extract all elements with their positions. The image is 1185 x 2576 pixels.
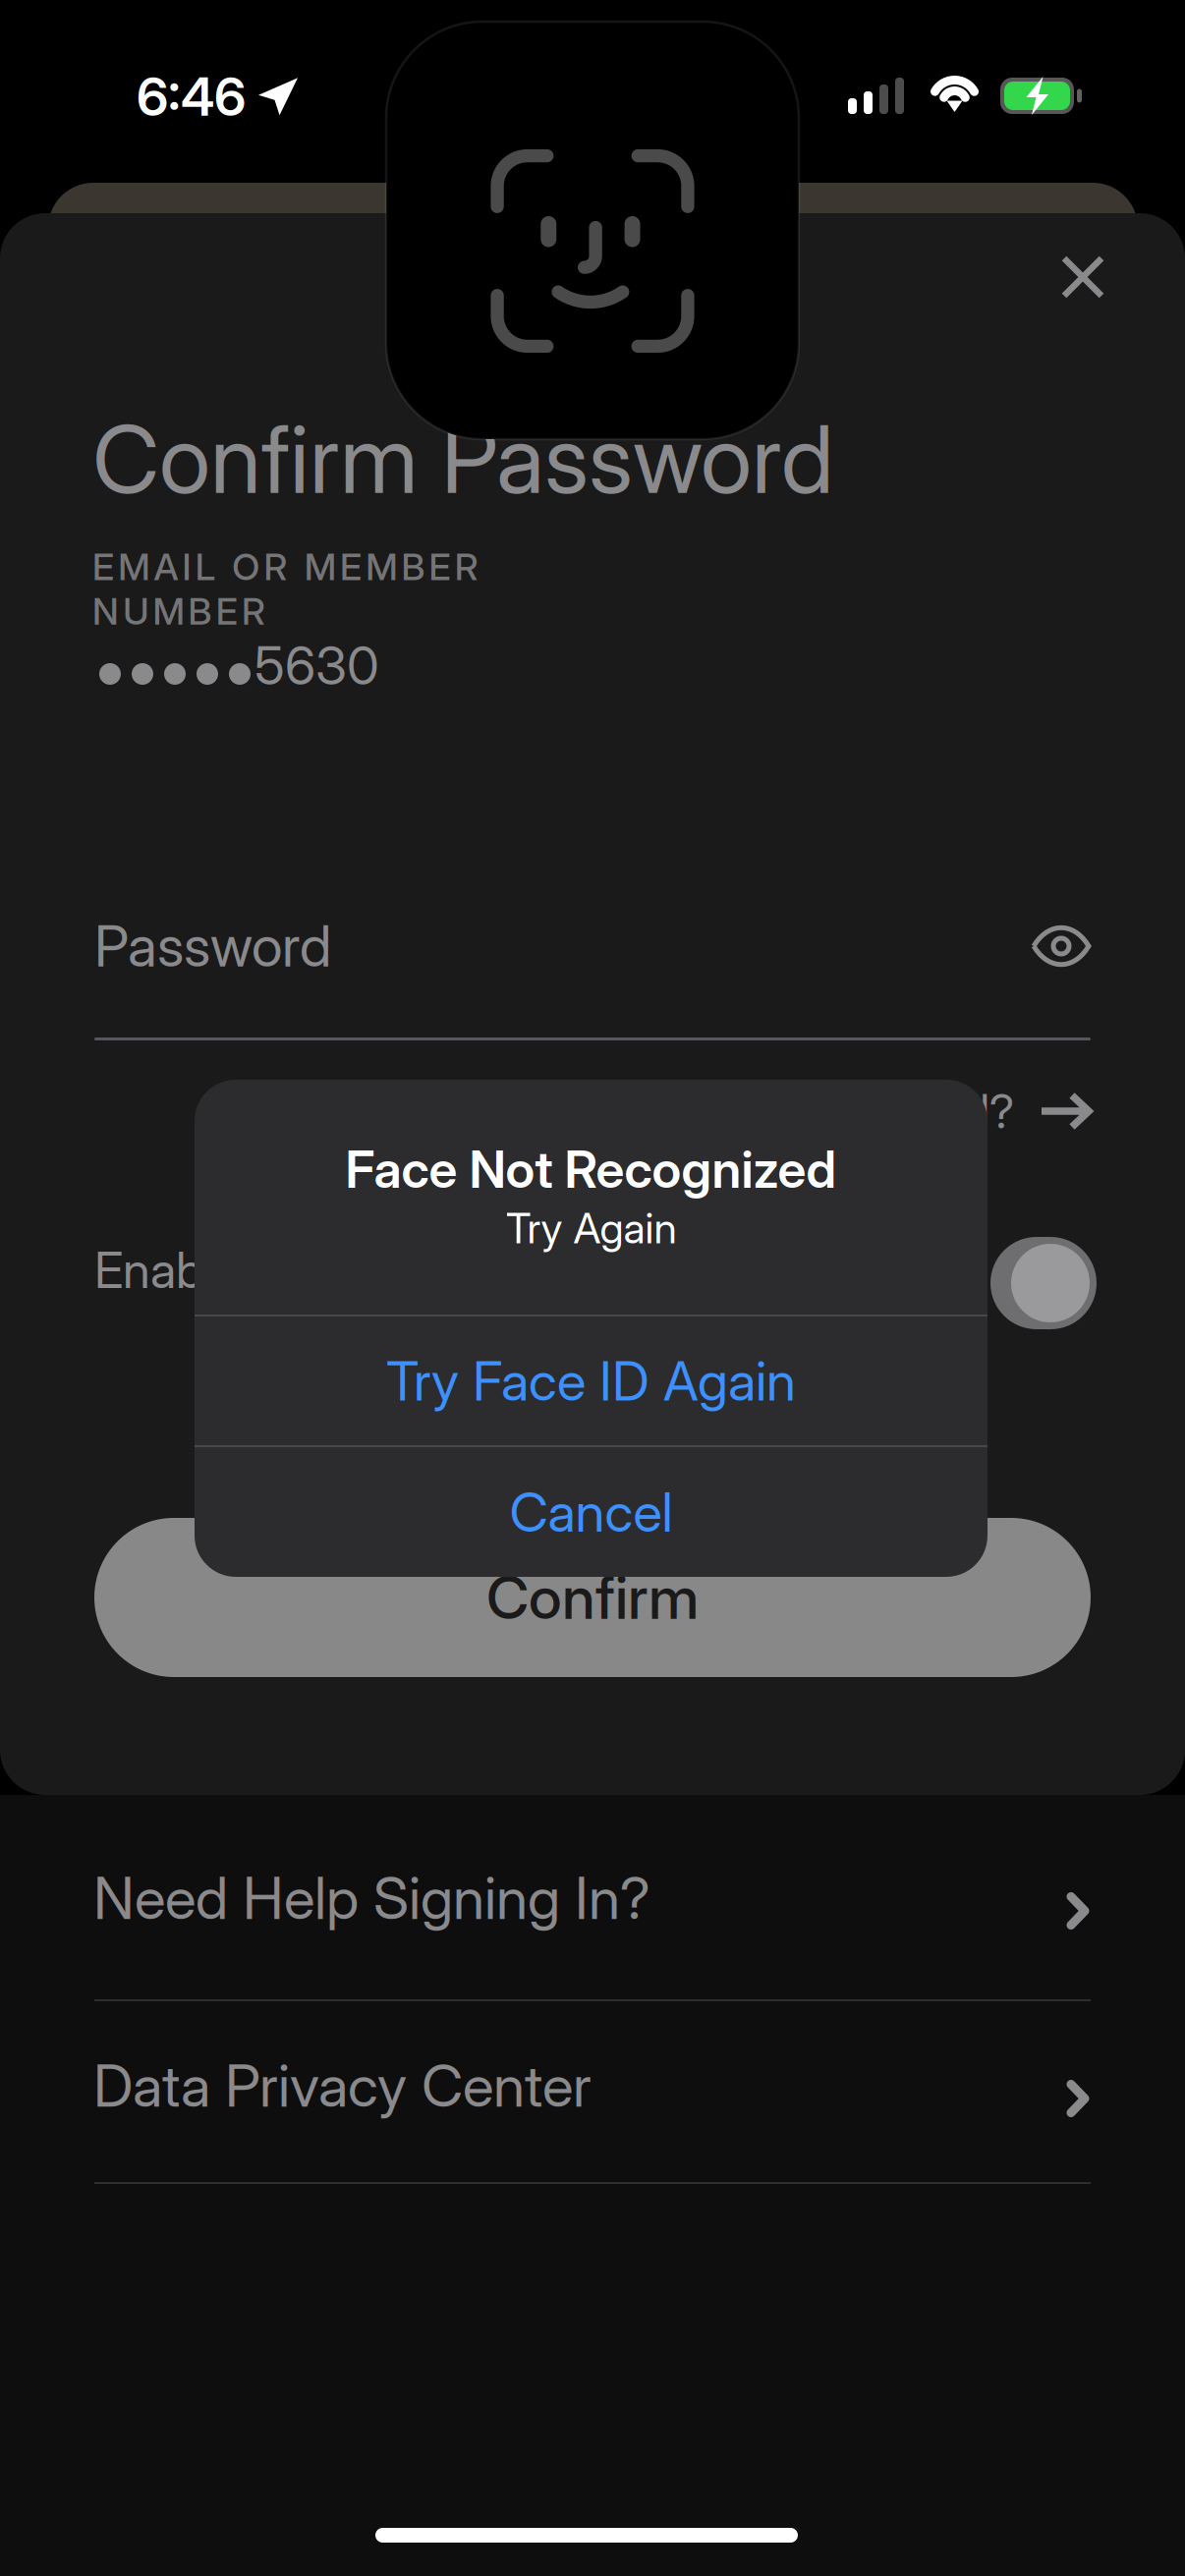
button[interactable]: Try Face ID Again xyxy=(195,1316,987,1445)
button[interactable]: Enable Face ID xyxy=(990,1237,1097,1329)
staticText: Confirm Password xyxy=(92,403,834,515)
staticText: Cancel xyxy=(509,1479,673,1544)
button[interactable]: Close xyxy=(1039,233,1127,321)
staticText: Need Help Signing In? xyxy=(93,1863,650,1933)
staticText: Password xyxy=(94,912,331,980)
staticText: 5630 xyxy=(254,634,379,697)
staticText: Enable Face ID xyxy=(94,1240,417,1300)
button[interactable]: Cancel xyxy=(195,1447,987,1577)
staticText: 6:46 xyxy=(137,65,246,128)
staticText: Try Face ID Again xyxy=(386,1348,796,1413)
staticText: Face Not Recognized xyxy=(345,1138,837,1200)
staticText: Forgot Password? xyxy=(647,1083,1014,1140)
staticText: Try Again xyxy=(506,1203,677,1253)
button[interactable]: Need Help Signing In? xyxy=(0,1820,1184,1977)
button[interactable]: Data Privacy Center xyxy=(0,2007,1184,2164)
staticText: EMAIL OR MEMBER NUMBER xyxy=(92,545,668,589)
staticText: Data Privacy Center xyxy=(93,2051,592,2121)
button[interactable]: Forgot Password? xyxy=(599,1081,1091,1142)
staticText: Confirm xyxy=(486,1562,699,1633)
button[interactable]: Confirm xyxy=(94,1518,1091,1677)
button[interactable]: Show password xyxy=(1032,927,1091,965)
